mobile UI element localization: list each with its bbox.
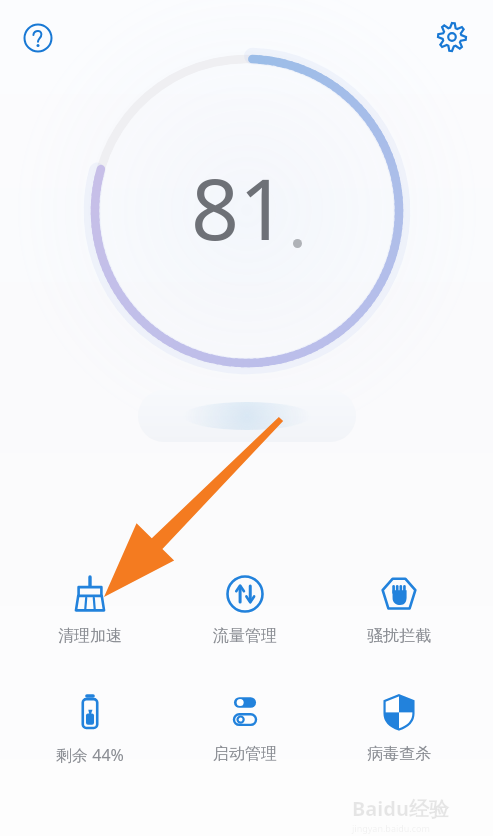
staticText: Baidu经验: [352, 795, 449, 822]
button[interactable]: Settings: [431, 16, 473, 58]
button[interactable]: Help: [18, 18, 58, 58]
button[interactable]: 流量管理: [185, 570, 305, 662]
staticText: 剩余 44%: [56, 744, 124, 766]
button[interactable]: [138, 390, 356, 442]
staticText: jingyan.baidu.com: [352, 822, 430, 834]
button[interactable]: 骚扰拦截: [339, 570, 459, 662]
staticText: 骚扰拦截: [367, 626, 431, 646]
staticText: 启动管理: [213, 744, 277, 764]
staticText: 病毒查杀: [367, 744, 431, 764]
button[interactable]: 清理加速: [30, 570, 150, 662]
staticText: 清理加速: [58, 626, 122, 646]
button[interactable]: 病毒查杀: [339, 688, 459, 780]
staticText: 流量管理: [213, 626, 277, 646]
button[interactable]: 启动管理: [185, 688, 305, 780]
button[interactable]: 剩余 44%: [30, 688, 150, 780]
staticText: 81: [191, 150, 288, 264]
